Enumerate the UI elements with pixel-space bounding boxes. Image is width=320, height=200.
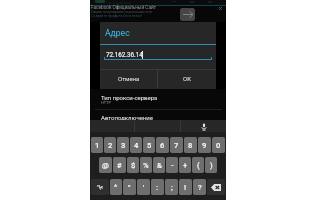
button[interactable]: 1 (91, 137, 103, 153)
button[interactable]: $ (127, 157, 139, 173)
staticText: Facebook Официальный Сайт (91, 5, 156, 11)
button[interactable]: OK (158, 69, 216, 88)
button[interactable]: 7 (170, 137, 183, 153)
staticText: HTTP (101, 100, 112, 105)
button[interactable]: Advertisement (90, 5, 226, 22)
button[interactable]: ¹\< (91, 179, 109, 195)
button[interactable]: Voice input (181, 120, 226, 133)
button[interactable]: Backspace (207, 179, 225, 195)
button[interactable]: - (166, 157, 178, 173)
staticText: Самая популярная социальная сеть (91, 10, 153, 14)
button[interactable]: 3 (117, 137, 129, 153)
staticText: ^ (114, 183, 118, 192)
button[interactable]: Отмена (100, 69, 157, 88)
staticText: " (128, 183, 131, 192)
staticText: 8 (188, 141, 193, 150)
button[interactable]: 6 (156, 137, 169, 153)
staticText: 6 (160, 141, 165, 150)
button[interactable]: " (123, 179, 136, 195)
button[interactable]: : (151, 179, 164, 195)
staticText: Отмена (118, 75, 140, 82)
button[interactable]: & (153, 157, 165, 173)
staticText: $ (131, 161, 136, 170)
staticText: ; (171, 183, 173, 192)
staticText: 4 (134, 141, 139, 150)
staticText: 7 (174, 141, 179, 150)
staticText: ( (197, 161, 200, 170)
staticText: 0 (216, 141, 221, 150)
button[interactable]: ? (193, 179, 206, 195)
staticText: ? (198, 183, 202, 192)
staticText: 3 (121, 141, 126, 150)
staticText: OK (183, 75, 191, 82)
staticText: Адрес (105, 28, 130, 38)
button[interactable]: @ (99, 157, 112, 173)
staticText: + (183, 161, 188, 170)
staticText: # (117, 161, 122, 170)
button[interactable]: ) (205, 157, 217, 173)
staticText: ) (210, 161, 213, 170)
button[interactable]: ( (192, 157, 204, 173)
staticText: Приложения (106, 0, 132, 5)
button[interactable]: 0 (212, 137, 225, 153)
button[interactable]: 5 (143, 137, 155, 153)
button[interactable]: ' (137, 179, 150, 195)
button[interactable]: 8 (184, 137, 197, 153)
staticText: 5 (147, 141, 152, 150)
staticText: ¹\< (97, 185, 103, 190)
staticText: Создайте профиль бесплатно! (91, 14, 143, 18)
staticText: - (171, 161, 174, 170)
button[interactable]: 2 (104, 137, 116, 153)
staticText: Автоподключение (101, 114, 153, 121)
staticText: 2 (108, 141, 113, 150)
staticText: ' (143, 183, 145, 192)
staticText: % (143, 161, 149, 170)
button[interactable]: ; (165, 179, 178, 195)
staticText: 1 (95, 141, 100, 150)
button[interactable]: 4 (130, 137, 142, 153)
staticText: 72.162.36.14 (106, 51, 143, 58)
button[interactable]: % (140, 157, 152, 173)
staticText: : (156, 183, 159, 192)
button[interactable]: 9 (198, 137, 211, 153)
staticText: @ (102, 161, 109, 170)
staticText: ! (184, 183, 187, 192)
button[interactable]: Тип прокси-сервера (90, 89, 226, 109)
button[interactable]: ^ (110, 179, 122, 195)
button[interactable]: Go (180, 8, 195, 21)
staticText: Тип прокси-сервера (101, 94, 158, 101)
button[interactable]: + (179, 157, 191, 173)
button[interactable]: Автоподключение (90, 110, 226, 121)
staticText: & (157, 161, 162, 170)
staticText: 9 (202, 141, 207, 150)
button[interactable]: Close ad (218, 6, 223, 11)
button[interactable]: # (113, 157, 126, 173)
button[interactable]: ! (179, 179, 192, 195)
